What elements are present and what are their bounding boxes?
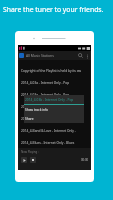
staticText: 2014_4-Blues - Internet Only - Blues	[21, 141, 75, 145]
button[interactable]: 2014_4-Band & Love - Internet Only -	[18, 125, 91, 137]
button[interactable]: Search	[77, 52, 84, 59]
button[interactable]: Show track info	[25, 105, 84, 114]
button[interactable]: App icon	[19, 53, 24, 58]
button[interactable]: 2014_4-03c - Internet Only - Pop	[18, 113, 91, 125]
staticText: Now Playing :	[21, 150, 39, 154]
button[interactable]: 2014_4-03a - Internet Only - Pop	[18, 89, 91, 101]
staticText: 2014_4-03a - Internet Only - Pop	[21, 81, 70, 85]
staticText: All Music Stations	[26, 53, 54, 58]
button[interactable]: 2014_4-03a - Internet Only - Pop	[18, 77, 91, 89]
button[interactable]: Share	[25, 114, 84, 123]
staticText: 2014_4-03a - Internet Only - Pop	[21, 93, 70, 97]
staticText: 2014_4-Band & Love - Internet Only -	[21, 129, 76, 133]
staticText: Share the tuner to your friends.	[3, 5, 104, 14]
button[interactable]: 2014_4-Blues - Internet Only - Blues	[18, 137, 91, 149]
button[interactable]: Stop	[30, 157, 36, 163]
button[interactable]: Copyright of the Playlist is held by its…	[18, 65, 91, 77]
staticText: 2014_4-03c - Internet Only - Pop	[21, 117, 69, 121]
staticText: 00:00	[81, 158, 89, 162]
button[interactable]: More options	[84, 53, 90, 59]
button[interactable]: 2014_4-03b - Internet Only - Pop	[18, 101, 91, 113]
button[interactable]: Play	[21, 157, 27, 163]
staticText: 2014_4-03b - Internet Only - Pop	[25, 98, 74, 102]
staticText: 2014_4-03b - Internet Only - Pop	[21, 105, 70, 109]
staticText: Share	[25, 117, 34, 121]
staticText: Copyright of the Playlist is held by its…	[21, 69, 82, 73]
staticText: Show track info	[25, 108, 48, 112]
